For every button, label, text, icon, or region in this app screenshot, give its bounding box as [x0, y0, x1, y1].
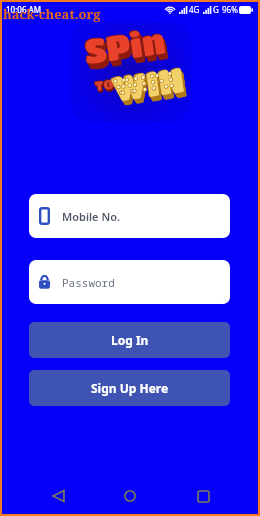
- staticText: WIN: [112, 64, 189, 112]
- staticText: SPin: [84, 26, 171, 76]
- staticText: WIN: [111, 62, 188, 111]
- button[interactable]: Recent apps: [186, 479, 220, 513]
- staticText: 96%: [222, 4, 238, 15]
- staticText: WIN: [111, 61, 188, 110]
- button[interactable]: Password: [29, 260, 230, 304]
- staticText: hack-cheat.org: [3, 5, 101, 23]
- staticText: WIN: [112, 63, 189, 111]
- staticText: SPin: [82, 21, 168, 71]
- staticText: TO: [94, 76, 115, 93]
- staticText: SPin: [83, 22, 170, 72]
- staticText: SPin: [84, 24, 171, 74]
- staticText: TO: [94, 77, 115, 94]
- staticText: WIN: [110, 59, 186, 108]
- staticText: TO: [94, 76, 115, 93]
- staticText: SPin: [83, 22, 170, 72]
- staticText: WIN: [112, 64, 189, 112]
- staticText: SPin: [84, 25, 171, 75]
- staticText: TO: [94, 76, 115, 93]
- staticText: TO: [95, 78, 116, 95]
- staticText: Mobile No.: [62, 209, 120, 224]
- staticText: SPin: [82, 21, 168, 71]
- staticText: TO: [94, 77, 115, 94]
- staticText: WIN: [111, 61, 188, 110]
- staticText: TO: [94, 77, 115, 94]
- button[interactable]: Log In: [29, 322, 230, 358]
- staticText: Password: [62, 275, 115, 290]
- staticText: WIN: [110, 60, 186, 109]
- staticText: SPin: [82, 20, 168, 70]
- staticText: TO: [95, 77, 116, 94]
- staticText: SPin: [81, 20, 167, 70]
- button[interactable]: Sign Up Here: [29, 370, 230, 406]
- staticText: SPin: [83, 23, 170, 73]
- button[interactable]: Home: [113, 479, 147, 513]
- staticText: Sign Up Here: [91, 380, 169, 396]
- button[interactable]: Mobile No.: [29, 194, 230, 238]
- staticText: SPin: [83, 23, 170, 73]
- staticText: TO: [95, 78, 116, 95]
- staticText: SPin: [84, 24, 171, 74]
- staticText: Log In: [111, 332, 149, 348]
- staticText: TO: [95, 77, 116, 94]
- staticText: 4G: [189, 4, 200, 15]
- staticText: 10:06 AM: [6, 4, 42, 15]
- button[interactable]: Back: [41, 479, 75, 513]
- staticText: G: [213, 4, 219, 15]
- staticText: WIN: [112, 63, 189, 111]
- staticText: TO: [95, 78, 116, 95]
- staticText: TO: [93, 75, 114, 92]
- staticText: WIN: [110, 60, 186, 109]
- staticText: WIN: [108, 58, 185, 107]
- staticText: WIN: [111, 62, 188, 111]
